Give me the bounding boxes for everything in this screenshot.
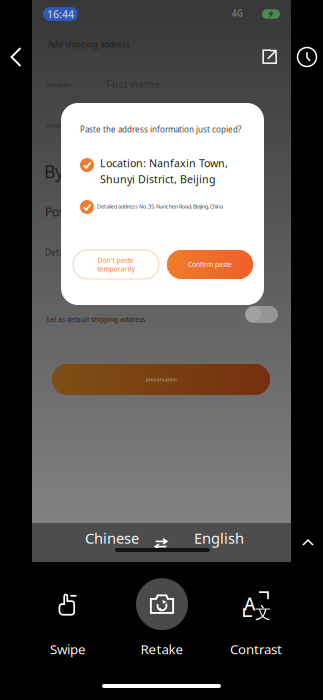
button[interactable]: Don't paste temporarily <box>73 250 159 279</box>
button[interactable]: A <box>211 577 301 659</box>
staticText: Location: Nanfaxin Town, <box>100 156 228 170</box>
staticText: Confirm paste <box>188 260 232 269</box>
button[interactable]: Retake <box>117 577 207 659</box>
staticText: Set as default shipping address <box>46 315 145 324</box>
staticText: Paste the address information just copie… <box>80 124 241 135</box>
staticText: Swipe <box>50 640 86 658</box>
staticText: Contrast <box>230 640 282 658</box>
staticText: preservation <box>145 376 176 383</box>
button[interactable]: Swipe <box>23 577 113 659</box>
staticText: Chinese <box>85 528 139 548</box>
staticText: Detail <box>45 247 67 258</box>
staticText: Add shipping address <box>48 39 130 50</box>
button[interactable]: English <box>188 525 250 551</box>
button[interactable]: Chinese <box>81 525 143 551</box>
staticText: 4G <box>232 8 243 19</box>
button[interactable]: History <box>291 35 323 79</box>
staticText: First name <box>106 77 160 91</box>
staticText: Detailed address No. 35, Nanchen Road, B… <box>97 203 223 210</box>
staticText: consignee <box>46 81 71 88</box>
staticText: Shunyi District, Beijing <box>100 172 216 186</box>
staticText: English <box>194 528 244 548</box>
staticText: 16:44 <box>47 7 74 21</box>
staticText: Retake <box>140 640 183 658</box>
staticText: mobile phone <box>46 122 78 129</box>
button[interactable]: Expand <box>294 523 322 562</box>
button[interactable]: Back <box>0 35 32 79</box>
button[interactable]: Confirm paste <box>167 250 253 279</box>
staticText: 文 <box>255 603 271 623</box>
button[interactable]: Swap languages <box>149 532 173 556</box>
staticText: Post <box>45 204 69 220</box>
staticText: Don't paste temporarily <box>97 256 134 273</box>
staticText: By <box>44 160 64 183</box>
staticText: A <box>244 592 255 615</box>
